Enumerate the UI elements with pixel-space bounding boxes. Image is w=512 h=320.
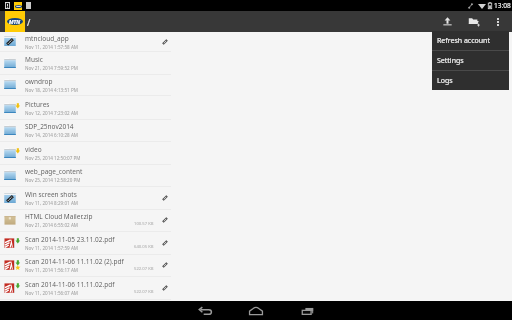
- button[interactable]: Settings: [432, 51, 509, 70]
- button[interactable]: SDP_25nov2014: [0, 119, 171, 141]
- staticText: Refresh account: [437, 36, 490, 46]
- staticText: 100.57 KB: [134, 221, 154, 227]
- staticText: Nov 11, 2014 8:29:01 AM: [25, 200, 78, 206]
- button[interactable]: Upload: [434, 11, 461, 32]
- staticText: web_page_content: [25, 167, 83, 176]
- button[interactable]: video: [0, 142, 171, 164]
- staticText: Scan 2014-11-05 23.11.02.pdf: [25, 235, 115, 244]
- button[interactable]: mtncloud_app: [0, 32, 171, 51]
- staticText: 522.07 KB: [134, 289, 154, 295]
- staticText: Pictures: [25, 100, 50, 109]
- staticText: Nov 21, 2014 7:59:52 PM: [25, 65, 78, 71]
- button[interactable]: More options: [488, 11, 510, 32]
- staticText: Nov 18, 2014 4:13:51 PM: [25, 87, 78, 93]
- staticText: Nov 14, 2014 6:10:28 AM: [25, 132, 78, 138]
- staticText: owndrop: [25, 77, 53, 86]
- staticText: Nov 11, 2014 1:57:59 AM: [25, 245, 78, 251]
- staticText: Scan 2014-11-06 11.11.02.pdf: [25, 280, 115, 289]
- button[interactable]: Logs: [432, 71, 509, 90]
- staticText: Nov 25, 2014 12:50:07 PM: [25, 155, 81, 161]
- staticText: SDP_25nov2014: [25, 122, 74, 131]
- button[interactable]: MTN Cloud home: [5, 11, 25, 32]
- staticText: HTML Cloud Mailer.zip: [25, 212, 93, 221]
- staticText: Nov 11, 2014 1:56:17 AM: [25, 267, 78, 273]
- staticText: Nov 11, 2014 1:56:07 AM: [25, 290, 78, 296]
- staticText: Scan 2014-11-06 11.11.02 (2).pdf: [25, 257, 124, 266]
- button[interactable]: Pictures: [0, 97, 171, 119]
- button[interactable]: Refresh account: [432, 31, 509, 50]
- button[interactable]: Home: [241, 301, 271, 320]
- button[interactable]: owndrop: [0, 74, 171, 95]
- staticText: /: [27, 16, 31, 28]
- staticText: 640.05 KB: [134, 244, 154, 250]
- button[interactable]: New folder: [461, 11, 488, 32]
- staticText: Nov 11, 2014 1:57:58 AM: [25, 44, 78, 50]
- button[interactable]: Back: [190, 301, 220, 320]
- staticText: Win screen shots: [25, 190, 77, 199]
- staticText: 522.07 KB: [134, 266, 154, 272]
- staticText: mtncloud_app: [25, 34, 69, 43]
- staticText: Nov 25, 2014 12:58:20 PM: [25, 177, 81, 183]
- button[interactable]: web_page_content: [0, 164, 171, 186]
- staticText: 13:08: [494, 1, 511, 10]
- staticText: Nov 12, 2014 7:23:02 AM: [25, 110, 78, 116]
- staticText: Logs: [437, 76, 453, 86]
- button[interactable]: Music: [0, 52, 171, 74]
- staticText: Music: [25, 55, 43, 64]
- button[interactable]: Recents: [293, 301, 323, 320]
- button[interactable]: Win screen shots: [0, 187, 171, 209]
- button[interactable]: Scan 2014-11-05 23.11.02.pdf: [0, 232, 171, 254]
- staticText: Nov 21, 2014 6:55:02 AM: [25, 222, 78, 228]
- staticText: Settings: [437, 56, 464, 66]
- staticText: MTN: [9, 18, 21, 25]
- staticText: video: [25, 145, 42, 154]
- button[interactable]: Scan 2014-11-06 11.11.02 (2).pdf: [0, 254, 171, 276]
- button[interactable]: HTML Cloud Mailer.zip: [0, 209, 171, 231]
- button[interactable]: Scan 2014-11-06 11.11.02.pdf: [0, 277, 171, 299]
